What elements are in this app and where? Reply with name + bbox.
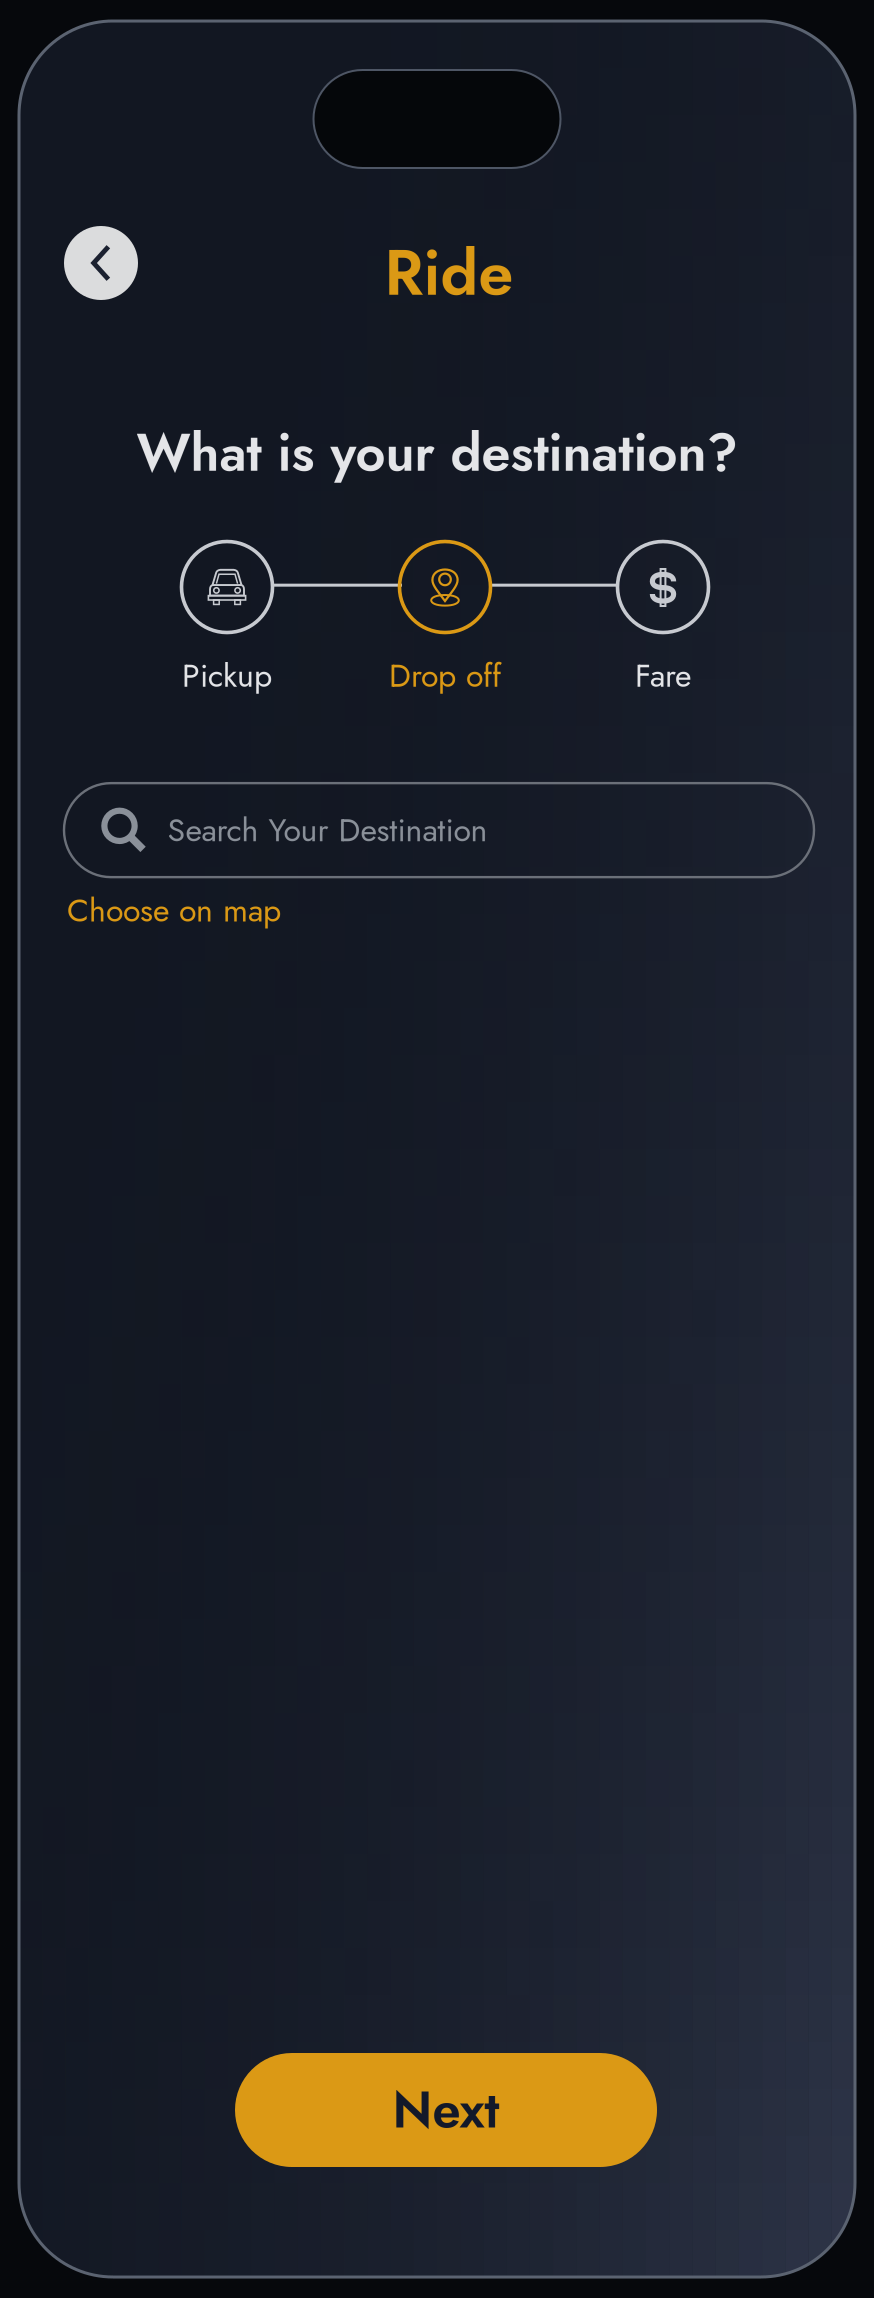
button[interactable]: Search Your Destination xyxy=(64,783,814,877)
button[interactable]: Fare xyxy=(554,540,772,700)
staticText: What is your destination? xyxy=(136,415,737,490)
button[interactable]: Pickup xyxy=(118,540,336,700)
staticText: Choose on map xyxy=(67,887,281,933)
button[interactable]: Drop off xyxy=(336,540,554,700)
button[interactable]: Next xyxy=(226,2053,648,2167)
staticText: Search Your Destination xyxy=(168,807,488,853)
staticText: Fare xyxy=(635,652,691,699)
button[interactable]: Back xyxy=(64,226,138,300)
staticText: Ride xyxy=(384,228,513,318)
button[interactable]: Choose on map xyxy=(67,877,281,943)
staticText: Drop off xyxy=(389,652,501,699)
staticText: Next xyxy=(392,2073,499,2147)
staticText: Pickup xyxy=(182,652,272,699)
